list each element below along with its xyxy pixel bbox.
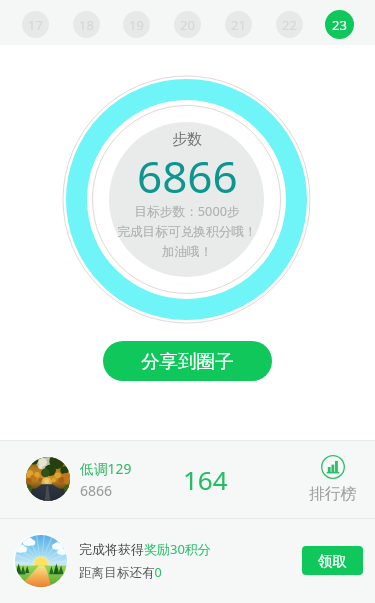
button[interactable]: 22	[276, 11, 303, 38]
button[interactable]: 20	[174, 11, 201, 38]
staticText: 低调129	[80, 459, 132, 478]
staticText: 20	[180, 16, 195, 34]
staticText: 23	[332, 16, 347, 34]
button[interactable]: 19	[123, 11, 150, 38]
staticText: 6866	[80, 481, 113, 500]
staticText: 17	[28, 16, 43, 34]
button[interactable]: 分享到圈子	[103, 341, 272, 381]
button[interactable]: 低调129	[0, 440, 375, 518]
staticText: 距离目标还有0	[79, 564, 162, 581]
staticText: 步数	[172, 130, 202, 149]
button[interactable]: 排行榜	[309, 454, 357, 504]
staticText: 18	[79, 16, 94, 34]
staticText: 领取	[318, 552, 347, 570]
button[interactable]: 23	[325, 10, 354, 39]
staticText: 19	[129, 16, 144, 34]
button[interactable]: 领取	[302, 546, 363, 575]
staticText: 目标步数：5000步 完成目标可兑换积分哦！ 加油哦！	[117, 202, 257, 259]
button[interactable]: 18	[73, 11, 100, 38]
staticText: 完成将获得奖励30积分	[79, 540, 211, 558]
staticText: 分享到圈子	[141, 350, 234, 373]
staticText: 164	[183, 462, 228, 497]
button[interactable]: 17	[22, 11, 49, 38]
staticText: 21	[231, 16, 246, 34]
staticText: 6866	[137, 146, 238, 206]
button[interactable]: 21	[225, 11, 252, 38]
staticText: 22	[282, 16, 297, 34]
staticText: 排行榜	[309, 484, 357, 504]
